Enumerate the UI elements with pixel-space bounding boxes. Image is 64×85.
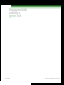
staticText: note — [5, 76, 11, 79]
staticText: example.com — [45, 76, 61, 79]
staticText: subtitle x — [9, 11, 21, 15]
staticText: Document title — [9, 8, 28, 12]
staticText: green link — [9, 14, 22, 18]
